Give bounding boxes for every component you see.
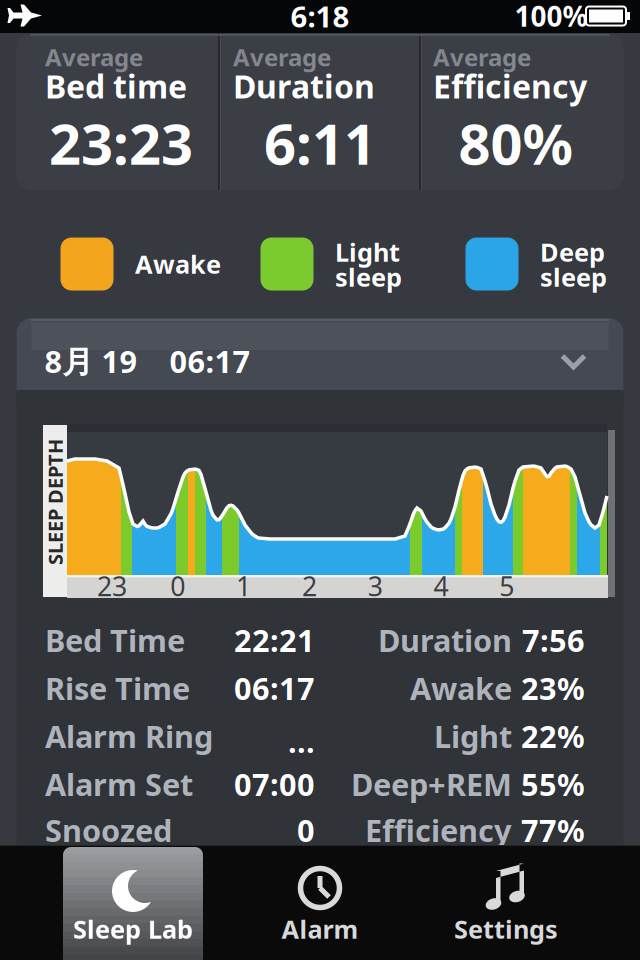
button[interactable]: Sleep Lab	[63, 847, 203, 960]
staticText: 4	[433, 568, 448, 604]
staticText: 2	[302, 568, 317, 604]
staticText: Snoozed	[45, 810, 172, 850]
staticText: Light	[335, 235, 400, 269]
staticText: SLEEP DEPTH	[0, 489, 118, 515]
button[interactable]: 8月 19 06:17	[16, 318, 623, 390]
staticText: ...	[288, 721, 315, 761]
staticText: 06:17	[234, 668, 315, 708]
staticText: 8月 19 06:17	[44, 341, 250, 381]
staticText: 22:21	[234, 620, 315, 660]
staticText: 23	[97, 568, 127, 604]
staticText: 0	[170, 568, 185, 604]
staticText: Alarm Set	[45, 764, 193, 804]
staticText: 0	[297, 810, 315, 850]
staticText: 22%	[521, 716, 585, 756]
staticText: Bed time	[45, 65, 187, 107]
staticText: Duration	[378, 620, 512, 660]
staticText: 23:23	[49, 106, 193, 180]
button[interactable]: Settings	[431, 847, 581, 960]
staticText: 6:11	[264, 106, 376, 180]
staticText: Alarm Ring	[45, 716, 213, 756]
staticText: 77%	[521, 810, 585, 850]
staticText: Efficiency	[365, 810, 512, 850]
staticText: 1	[236, 568, 251, 604]
button[interactable]: Alarm	[245, 847, 395, 960]
staticText: 55%	[521, 764, 585, 804]
staticText: Efficiency	[433, 65, 587, 107]
staticText: sleep	[335, 260, 402, 294]
staticText: 7:56	[522, 620, 585, 660]
staticText: Sleep Lab	[73, 912, 193, 946]
staticText: 3	[368, 568, 383, 604]
staticText: Duration	[233, 65, 375, 107]
staticText: sleep	[540, 260, 607, 294]
staticText: 6:18	[290, 0, 349, 35]
staticText: 80%	[458, 106, 573, 180]
staticText: 100%	[514, 0, 587, 35]
staticText: 23%	[521, 668, 585, 708]
staticText: Average	[233, 41, 331, 73]
staticText: 07:00	[234, 764, 315, 804]
staticText: Deep+REM	[351, 764, 512, 804]
staticText: Settings	[454, 912, 558, 946]
staticText: Average	[45, 41, 143, 73]
staticText: Average	[433, 41, 531, 73]
staticText: Rise Time	[45, 668, 190, 708]
staticText: Deep	[540, 235, 605, 269]
staticText: Alarm	[281, 912, 358, 946]
staticText: 5	[499, 568, 514, 604]
staticText: Light	[434, 716, 512, 756]
staticText: Awake	[135, 247, 221, 281]
staticText: Awake	[410, 668, 512, 708]
staticText: Bed Time	[45, 620, 185, 660]
